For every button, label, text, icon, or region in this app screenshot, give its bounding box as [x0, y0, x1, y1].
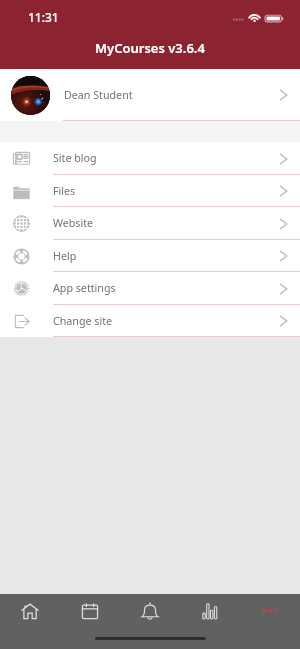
staticText: Files	[53, 184, 76, 199]
staticText: Help	[53, 249, 77, 264]
button[interactable]: More	[240, 594, 300, 627]
staticText: Dean Student	[64, 88, 133, 103]
button[interactable]: Notifications	[120, 594, 180, 627]
staticText: 11:31	[28, 9, 59, 25]
button[interactable]: Site blog	[0, 142, 300, 175]
button[interactable]: Grades	[180, 594, 240, 627]
button[interactable]: Dean Student	[0, 69, 300, 121]
button[interactable]: Website	[0, 207, 300, 240]
staticText: Site blog	[53, 151, 97, 166]
button[interactable]: Change site	[0, 305, 300, 337]
button[interactable]: Home	[0, 594, 60, 627]
staticText: Change site	[53, 314, 113, 329]
staticText: App settings	[53, 281, 116, 296]
staticText: Website	[53, 216, 94, 231]
staticText: MyCourses v3.6.4	[95, 39, 205, 57]
button[interactable]: Help	[0, 240, 300, 272]
button[interactable]: App settings	[0, 272, 300, 305]
button[interactable]: Files	[0, 175, 300, 207]
button[interactable]: Calendar	[60, 594, 120, 627]
